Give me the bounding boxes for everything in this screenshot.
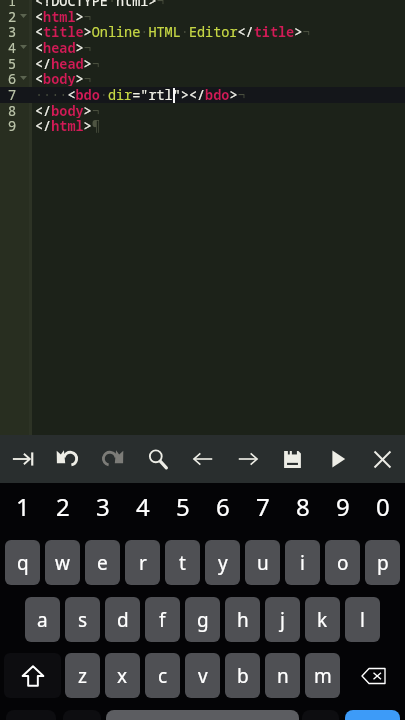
staticText: 8 [296,490,310,523]
staticText: s [78,607,88,633]
button[interactable]: z [65,653,100,698]
button[interactable]: a [25,597,60,642]
staticText: e [97,550,108,576]
staticText: 3 [8,23,17,39]
staticText: </html>¶ [35,117,100,133]
button[interactable]: Move right [225,435,270,483]
button[interactable]: Tab [0,435,45,483]
staticText: ····<bdo·dir="rtl"></bdo>¬ [35,86,246,102]
button[interactable]: 1 [5,482,40,530]
staticText: r [139,550,147,576]
button[interactable]: l [345,597,380,642]
button[interactable]: 7 [245,482,280,530]
staticText: y [218,550,228,576]
button[interactable]: Move left [180,435,225,483]
button[interactable]: v [185,653,220,698]
staticText: 2 [8,8,17,24]
staticText: 5 [8,55,17,71]
staticText: <!DOCTYPE·html>¬ [35,0,165,8]
staticText: 4 [8,39,17,55]
staticText: q [17,550,29,576]
staticText: 1 [8,0,17,8]
button[interactable]: d [105,597,140,642]
button[interactable]: m [305,653,340,698]
staticText: 0 [376,490,390,523]
staticText: 7 [8,86,17,102]
staticText: t [179,550,186,576]
staticText: a [37,607,48,633]
button[interactable]: o [325,540,360,585]
button[interactable]: Search [135,435,180,483]
button[interactable]: Close [360,435,405,483]
button[interactable]: c [145,653,180,698]
button[interactable]: t [165,540,200,585]
button[interactable]: Undo [45,435,90,483]
button[interactable]: q [5,540,40,585]
staticText: z [78,663,87,689]
button[interactable]: Enter [345,710,400,720]
button[interactable]: w [45,540,80,585]
staticText: 9 [336,490,350,523]
button[interactable]: i [285,540,320,585]
button[interactable]: Backspace [345,653,401,698]
button[interactable]: 8 [285,482,320,530]
button[interactable]: Shift [4,653,61,698]
button[interactable]: Space [106,710,299,720]
staticText: </head>¬ [35,55,100,71]
button[interactable]: 6 [205,482,240,530]
button[interactable]: h [225,597,260,642]
staticText: 6 [216,490,230,523]
staticText: 7 [256,490,270,523]
button[interactable]: j [265,597,300,642]
staticText: l [360,607,365,633]
button[interactable]: Save [270,435,315,483]
staticText: 9 [8,117,17,133]
button[interactable]: Redo [90,435,135,483]
button[interactable]: 0 [365,482,400,530]
staticText: <html>¬ [35,8,92,24]
staticText: c [158,663,168,689]
button[interactable]: 4 [125,482,160,530]
staticText: m [314,663,332,689]
staticText: <head>¬ [35,39,92,55]
button[interactable]: 5 [165,482,200,530]
staticText: 3 [96,490,110,523]
button[interactable]: b [225,653,260,698]
staticText: p [377,550,389,576]
button[interactable]: e [85,540,120,585]
button[interactable]: g [185,597,220,642]
button[interactable]: r [125,540,160,585]
staticText: <body>¬ [35,70,92,86]
staticText: w [55,550,70,576]
button[interactable]: Run [315,435,360,483]
staticText: v [198,663,208,689]
button[interactable]: s [65,597,100,642]
staticText: b [237,663,249,689]
button[interactable]: 9 [325,482,360,530]
staticText: d [117,607,129,633]
button[interactable]: x [105,653,140,698]
button[interactable]: 3 [85,482,120,530]
staticText: i [300,550,305,576]
staticText: 2 [56,490,70,523]
button[interactable]: k [305,597,340,642]
button[interactable]: 2 [45,482,80,530]
button[interactable]: y [205,540,240,585]
staticText: o [337,550,349,576]
staticText: 6 [8,70,17,86]
button[interactable]: u [245,540,280,585]
staticText: 1 [16,490,30,523]
staticText: 8 [8,102,17,118]
staticText: u [257,550,269,576]
staticText: x [117,663,128,689]
staticText: h [237,607,249,633]
button[interactable]: f [145,597,180,642]
staticText: n [277,663,289,689]
staticText: j [280,607,285,633]
button[interactable]: p [365,540,400,585]
button[interactable]: n [265,653,300,698]
staticText: <title>Online·HTML·Editor</title>¬ [35,23,311,39]
